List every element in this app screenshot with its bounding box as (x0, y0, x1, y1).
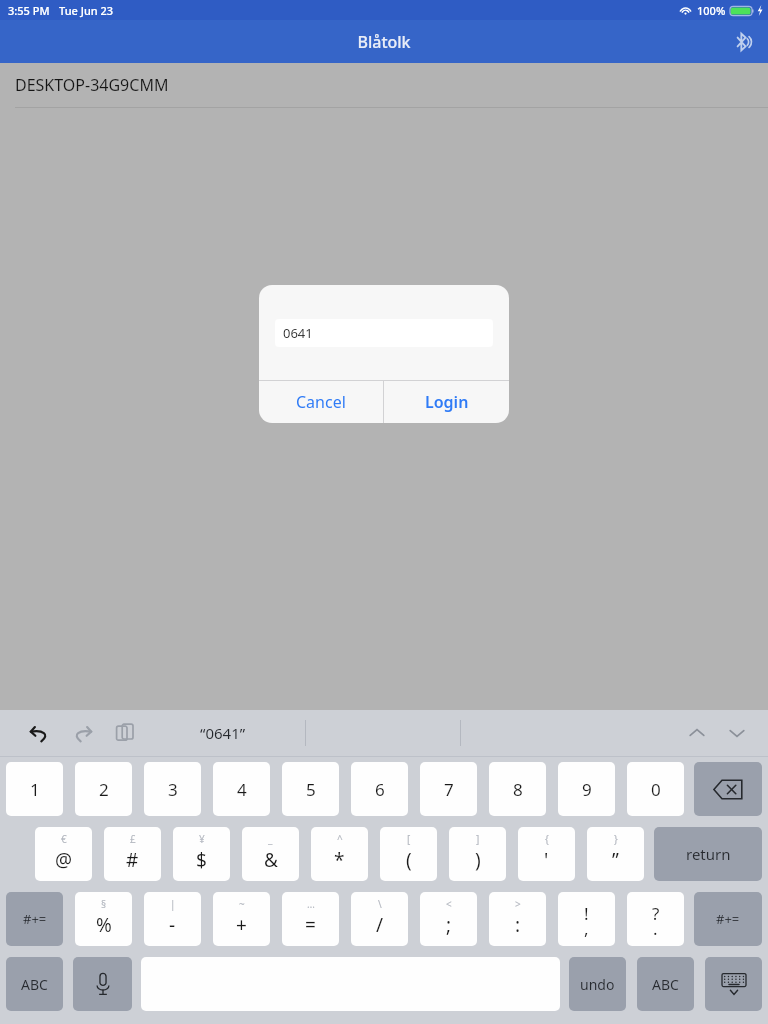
staticText: ; (446, 912, 452, 938)
staticText: } (614, 832, 618, 846)
button[interactable]: return (654, 827, 762, 881)
button[interactable]: 8 (489, 762, 546, 816)
button[interactable]: #+= (6, 892, 63, 946)
button[interactable]: Dictate (73, 957, 132, 1011)
button[interactable]: [ (380, 827, 437, 881)
staticText: 3:55 PM (8, 3, 50, 18)
button[interactable]: ? (627, 892, 684, 946)
staticText: $ (196, 847, 207, 873)
button[interactable]: 9 (558, 762, 615, 816)
staticText: ^ (337, 832, 343, 846)
button[interactable]: #+= (694, 892, 762, 946)
button[interactable]: 3 (144, 762, 201, 816)
staticText: undo (580, 975, 615, 994)
staticText: § (101, 897, 107, 911)
button[interactable]: 1 (6, 762, 63, 816)
button[interactable]: _ (242, 827, 299, 881)
staticText: 1 (30, 778, 40, 801)
button[interactable]: \ (351, 892, 408, 946)
button[interactable]: DESKTOP-34G9CMM (0, 63, 768, 107)
button[interactable]: 7 (420, 762, 477, 816)
staticText: 2 (99, 778, 109, 801)
button[interactable]: ¥ (173, 827, 230, 881)
staticText: ) (475, 847, 481, 873)
staticText: ¥ (199, 832, 205, 846)
staticText: #+= (23, 910, 47, 928)
button[interactable]: 5 (282, 762, 339, 816)
staticText: 7 (444, 778, 454, 801)
staticText: 5 (306, 778, 316, 801)
staticText: | (170, 897, 176, 911)
staticText: * (334, 847, 345, 873)
button[interactable]: Bluetooth (722, 22, 762, 62)
staticText: Login (425, 391, 469, 413)
staticText: ! (584, 902, 589, 925)
staticText: \ (378, 897, 382, 911)
button[interactable]: ~ (213, 892, 270, 946)
button[interactable]: 4 (213, 762, 270, 816)
button[interactable]: … (282, 892, 339, 946)
button[interactable]: | (144, 892, 201, 946)
button[interactable]: Cancel (259, 381, 383, 423)
button[interactable]: Next (720, 716, 754, 750)
staticText: # (126, 847, 139, 873)
staticText: £ (130, 832, 136, 846)
staticText: @ (55, 847, 73, 873)
button[interactable]: ] (449, 827, 506, 881)
staticText: ABC (652, 975, 679, 994)
staticText: Cancel (296, 391, 346, 413)
staticText: - (169, 912, 176, 938)
button[interactable]: 0 (627, 762, 684, 816)
button[interactable]: ! (558, 892, 615, 946)
staticText: , (584, 917, 589, 940)
staticText: return (686, 844, 731, 864)
staticText: 4 (237, 778, 247, 801)
staticText: … (307, 897, 315, 911)
staticText: € (61, 832, 67, 846)
staticText: ] (476, 832, 480, 846)
staticText: 0641 (283, 324, 313, 342)
staticText: DESKTOP-34G9CMM (15, 74, 169, 96)
button[interactable]: undo (569, 957, 626, 1011)
staticText: ' (544, 847, 549, 873)
staticText: > (515, 897, 521, 911)
button[interactable]: 0641 (275, 319, 493, 347)
staticText: Tue Jun 23 (59, 3, 114, 18)
staticText: < (446, 897, 452, 911)
staticText: 0 (651, 778, 661, 801)
button[interactable]: 6 (351, 762, 408, 816)
button[interactable]: ABC (637, 957, 694, 1011)
staticText: & (264, 847, 278, 873)
button[interactable]: £ (104, 827, 161, 881)
button[interactable]: { (518, 827, 575, 881)
staticText: 8 (513, 778, 523, 801)
staticText: = (305, 912, 316, 938)
button[interactable]: } (587, 827, 644, 881)
staticText: 3 (168, 778, 178, 801)
button[interactable]: § (75, 892, 132, 946)
staticText: 6 (375, 778, 385, 801)
button[interactable]: Login (384, 381, 509, 423)
button[interactable]: 2 (75, 762, 132, 816)
button[interactable]: Backspace (694, 762, 762, 816)
button[interactable]: Hide keyboard (705, 957, 762, 1011)
staticText: % (96, 912, 112, 938)
button[interactable]: “0641” (200, 723, 246, 743)
button[interactable]: € (35, 827, 92, 881)
staticText: ? (652, 902, 660, 925)
staticText: ~ (239, 897, 245, 911)
button[interactable]: Previous (680, 716, 714, 750)
staticText: / (376, 912, 384, 938)
button[interactable]: < (420, 892, 477, 946)
staticText: 9 (582, 778, 592, 801)
button[interactable]: ABC (6, 957, 63, 1011)
button[interactable]: Undo (22, 716, 56, 750)
button[interactable]: Paste (108, 716, 142, 750)
staticText: Blåtolk (357, 31, 411, 53)
staticText: ABC (21, 975, 48, 994)
button[interactable]: Redo (65, 716, 99, 750)
staticText: #+= (716, 910, 740, 928)
button[interactable]: > (489, 892, 546, 946)
button[interactable]: ^ (311, 827, 368, 881)
